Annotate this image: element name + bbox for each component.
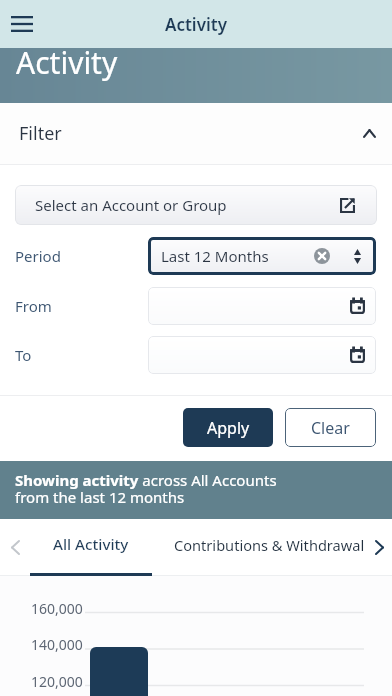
staticText: 120,000 bbox=[31, 672, 83, 691]
staticText: 160,000 bbox=[31, 599, 83, 618]
staticText: From bbox=[15, 296, 52, 316]
staticText: Last 12 Months bbox=[161, 246, 269, 266]
staticText: Select an Account or Group bbox=[35, 195, 227, 215]
staticText: To bbox=[15, 345, 32, 365]
staticText: Apply bbox=[207, 417, 250, 439]
button[interactable]: Contributions & Withdrawal bbox=[152, 519, 366, 576]
other: Change period bbox=[354, 249, 361, 264]
staticText: 140,000 bbox=[31, 635, 83, 654]
button[interactable]: Pick a date bbox=[148, 287, 376, 325]
button[interactable]: Previous tabs bbox=[0, 519, 30, 576]
staticText: Contributions & Withdrawal bbox=[174, 535, 365, 555]
button[interactable]: Select an Account or Group bbox=[15, 185, 377, 225]
button[interactable]: Apply bbox=[183, 408, 273, 447]
button[interactable]: Next tabs bbox=[366, 519, 392, 576]
staticText: Showing activity across All Accounts fro… bbox=[15, 470, 277, 507]
other: Pick a date bbox=[350, 298, 365, 314]
button[interactable]: Pick a date bbox=[148, 336, 376, 374]
button[interactable]: Last 12 Months bbox=[148, 237, 376, 275]
other: Pick a date bbox=[350, 347, 365, 363]
staticText: Period bbox=[15, 246, 61, 266]
staticText: Filter bbox=[19, 121, 62, 146]
button[interactable]: Filter bbox=[0, 103, 392, 164]
other: Open bbox=[340, 198, 355, 213]
button[interactable]: Clear bbox=[285, 408, 376, 447]
button[interactable]: Menu bbox=[0, 2, 44, 46]
staticText: Activity bbox=[16, 42, 118, 83]
button[interactable]: All Activity bbox=[30, 519, 152, 576]
staticText: All Activity bbox=[53, 534, 129, 555]
staticText: Clear bbox=[311, 417, 350, 439]
other: Clear selection bbox=[314, 248, 330, 264]
staticText: Activity bbox=[165, 13, 227, 36]
